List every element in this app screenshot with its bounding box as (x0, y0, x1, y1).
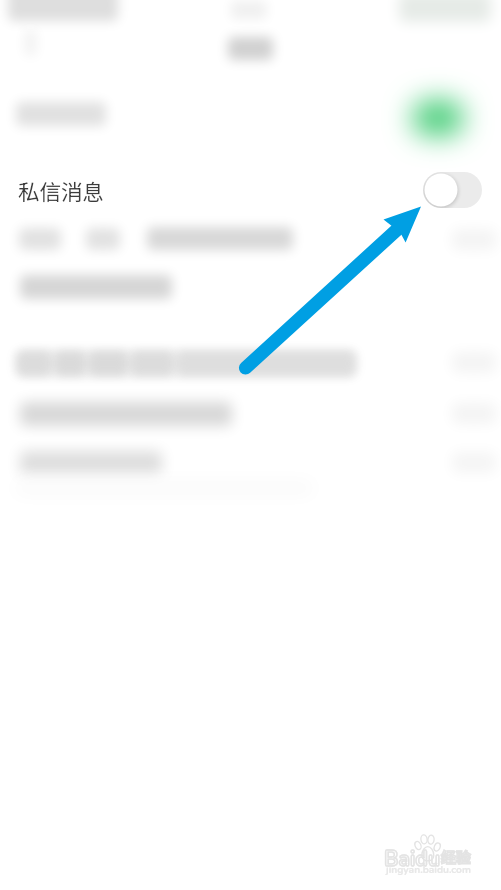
staticText: jingyan.baidu.com (386, 863, 471, 877)
button[interactable]: 私信消息开关 (423, 172, 482, 208)
staticText: 私信消息 (18, 175, 105, 206)
staticText: Baidu (384, 845, 441, 874)
staticText: 经验 (441, 846, 472, 868)
button[interactable]: 私信消息 (0, 159, 501, 221)
